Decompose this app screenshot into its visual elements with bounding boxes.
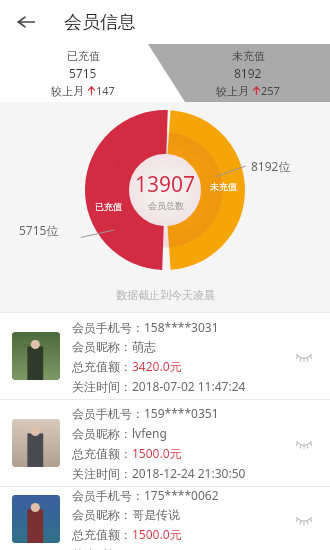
staticText: 数据截止到今天凌晨	[116, 288, 215, 302]
staticText: 会员手机号：158****3031	[72, 319, 219, 335]
staticText: 较上月	[216, 83, 252, 98]
staticText: 总充值额：1500.0元	[72, 526, 182, 542]
staticText: 已充值	[95, 201, 122, 212]
button[interactable]: 会员手机号：158****3031	[0, 313, 330, 399]
button[interactable]: Toggle visibility	[290, 429, 318, 457]
staticText: 关注时间：2018-12-24 21:30:50	[72, 465, 246, 481]
button[interactable]: 会员手机号：159****0351	[0, 400, 330, 486]
staticText: 5715	[69, 65, 97, 81]
staticText: 未充值	[210, 181, 237, 192]
staticText: 8192	[234, 65, 262, 81]
staticText: 未充值	[232, 49, 265, 63]
staticText: 关注时间：2018-07-02 11:47:24	[72, 378, 246, 394]
button[interactable]: 未充值	[165, 44, 330, 102]
button[interactable]: Toggle visibility	[290, 505, 318, 533]
staticText: 会员总数	[148, 200, 184, 211]
staticText: 会员手机号：175****0062	[72, 487, 219, 503]
staticText: 总充值额：1500.0元	[72, 445, 182, 461]
staticText: 会员昵称：哥是传说	[72, 507, 180, 522]
staticText: 已充值	[67, 49, 100, 63]
staticText: 会员昵称：萌志	[72, 339, 156, 354]
staticText: 147	[96, 83, 115, 98]
staticText: 5715位	[19, 222, 59, 238]
staticText: 13907	[135, 170, 196, 199]
staticText: 较上月	[51, 83, 87, 98]
button[interactable]: Toggle visibility	[290, 342, 318, 370]
staticText: 会员昵称：lvfeng	[72, 425, 167, 441]
staticText: 总充值额：3420.0元	[72, 358, 182, 374]
button[interactable]: 已充值	[0, 44, 165, 102]
staticText: 会员信息	[64, 11, 136, 34]
button[interactable]: Back	[8, 4, 44, 40]
staticText: 会员手机号：159****0351	[72, 405, 219, 421]
staticText: 257	[261, 83, 280, 98]
button[interactable]: 会员手机号：175****0062	[0, 487, 330, 550]
staticText: 关注时间：2018-11-02 09:15:10	[72, 546, 246, 550]
staticText: 8192位	[251, 158, 291, 174]
